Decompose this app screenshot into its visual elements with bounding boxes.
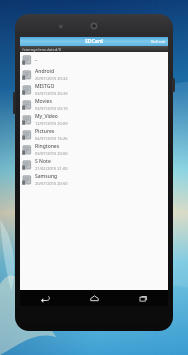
button[interactable]: Ringtones (20, 142, 168, 157)
staticText: 20/07/2015 20:50 (35, 181, 68, 186)
staticText: Android (35, 68, 55, 75)
button[interactable]: Back (20, 290, 70, 306)
button[interactable]: MISTGO (20, 82, 168, 97)
button[interactable]: S Note (20, 157, 168, 172)
button[interactable]: Home (70, 290, 119, 306)
staticText: 03/07/2015 20:50 (35, 151, 68, 156)
staticText: .. (35, 56, 38, 63)
button[interactable]: Samsung (20, 172, 168, 187)
button[interactable]: Android (20, 67, 168, 82)
button[interactable]: .. (20, 52, 168, 67)
staticText: MISTGO (35, 83, 55, 90)
button[interactable]: Recents (119, 290, 168, 306)
button[interactable]: My_Video (20, 112, 168, 127)
staticText: S Note (35, 158, 51, 165)
staticText: 04/07/2015 16:26 (35, 136, 68, 141)
staticText: 12/07/2015 20:09 (35, 121, 68, 126)
staticText: Refresh (151, 39, 166, 44)
staticText: 20/07/2015 20:32 (35, 76, 68, 81)
staticText: 03/07/2015 00:19 (35, 106, 68, 111)
staticText: Pictures (35, 128, 55, 135)
button[interactable]: Pictures (20, 127, 168, 142)
button[interactable]: Movies (20, 97, 168, 112)
staticText: Movies (35, 98, 52, 105)
staticText: Ringtones (35, 143, 60, 150)
button[interactable]: SDCard (20, 37, 168, 46)
staticText: SDCard (85, 38, 103, 45)
button[interactable]: Refresh (151, 39, 166, 44)
button[interactable]: /storage/emulated/0 (20, 46, 168, 52)
staticText: 03/07/2015 20:39 (35, 91, 68, 96)
staticText: Samsung (35, 173, 58, 180)
staticText: /storage/emulated/0 (22, 47, 61, 52)
staticText: My_Video (35, 113, 58, 120)
staticText: 21/02/2015 21:00 (35, 166, 68, 171)
